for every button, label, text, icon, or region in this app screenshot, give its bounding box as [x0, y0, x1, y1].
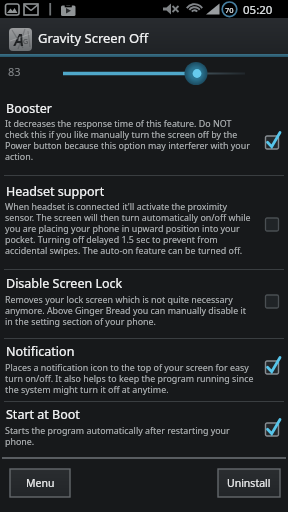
button[interactable]: Menu: [10, 469, 70, 497]
staticText: A: [14, 29, 25, 51]
staticText: Headset support: [6, 183, 105, 200]
staticText: Starts the program automatically after r…: [5, 424, 230, 447]
button[interactable]: [0, 57, 288, 96]
staticText: Disable Screen Lock: [6, 275, 123, 292]
button[interactable]: [0, 96, 288, 175]
staticText: 83: [8, 64, 21, 79]
staticText: Notification: [6, 343, 75, 360]
staticText: 70: [225, 5, 234, 15]
staticText: Start at Boot: [6, 406, 80, 423]
staticText: When headset is connected it'll activate…: [5, 200, 251, 256]
staticText: 05:20: [243, 2, 273, 18]
button[interactable]: [0, 402, 288, 457]
button[interactable]: [0, 176, 288, 269]
staticText: Gravity Screen Off: [38, 29, 149, 47]
button[interactable]: [0, 339, 288, 401]
staticText: Places a notification icon to the top of…: [5, 361, 254, 395]
staticText: Booster: [6, 100, 52, 117]
staticText: It decreases the response time of this f…: [5, 117, 250, 162]
button[interactable]: [0, 270, 288, 338]
staticText: Uninstall: [227, 476, 271, 490]
button[interactable]: Uninstall: [218, 469, 280, 497]
staticText: G: [23, 37, 29, 47]
staticText: Menu: [26, 476, 55, 490]
staticText: Removes your lock screen which is not qu…: [5, 293, 246, 327]
